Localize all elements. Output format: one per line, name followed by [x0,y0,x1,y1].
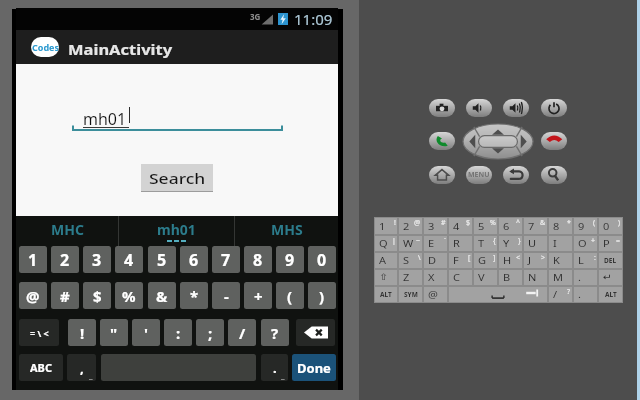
button[interactable]: 1 [375,218,397,234]
button[interactable]: # [51,282,79,309]
button[interactable]: Search [141,164,213,191]
button[interactable] [449,287,547,302]
button[interactable]: V [474,270,497,285]
button[interactable]: . [574,270,597,285]
button[interactable]: ' [132,319,160,346]
button[interactable]: / [228,319,256,346]
button[interactable]: 5 [474,218,497,234]
button[interactable]: 4 [115,246,143,273]
button[interactable]: Directional pad [463,124,533,159]
button[interactable]: G [474,253,497,268]
button[interactable]: % [115,282,143,309]
button[interactable]: W [399,236,422,251]
button[interactable]: 9 [276,246,304,273]
button[interactable]: 9 [574,218,597,234]
button[interactable]: Call [429,132,455,150]
button[interactable]: Power [541,99,567,117]
button[interactable]: = \ < [19,319,59,346]
button[interactable]: - [212,282,240,309]
button[interactable]: E [424,236,447,251]
button[interactable]: H [499,253,522,268]
button[interactable]: + [244,282,272,309]
button[interactable]: $ [83,282,111,309]
button[interactable]: Volume down [466,99,492,117]
button[interactable]: DEL [599,253,622,268]
button[interactable]: 8 [549,218,572,234]
button[interactable]: , [67,354,96,381]
button[interactable]: MENU [466,166,492,184]
button[interactable]: . [261,354,288,381]
button[interactable]: J [524,253,547,268]
button[interactable]: R [449,236,472,251]
button[interactable]: Search [541,166,567,184]
button[interactable]: . [574,287,597,302]
button[interactable]: M [549,270,572,285]
button[interactable]: 2 [51,246,79,273]
button[interactable]: 7 [524,218,547,234]
button[interactable]: Q [375,236,397,251]
button[interactable]: @ [424,287,447,302]
button[interactable]: U [524,236,547,251]
button[interactable]: 7 [212,246,240,273]
button[interactable]: Backspace [296,319,335,346]
button[interactable]: 3 [424,218,447,234]
button[interactable]: 6 [180,246,208,273]
button[interactable]: @ [19,282,47,309]
button[interactable]: Done [292,354,336,381]
button[interactable]: P [599,236,622,251]
button[interactable]: ABC [19,354,63,381]
button[interactable]: Z [399,270,422,285]
button[interactable]: ( [276,282,304,309]
button[interactable]: mh01 [72,108,283,132]
button[interactable]: * [180,282,208,309]
button[interactable]: ) [308,282,336,309]
button[interactable]: L [574,253,597,268]
button[interactable]: T [474,236,497,251]
button[interactable]: 2 [399,218,422,234]
staticText: ALT [605,290,617,299]
button[interactable]: D [424,253,447,268]
button[interactable]: ? [261,319,289,346]
button[interactable]: C [449,270,472,285]
button[interactable]: S [399,253,422,268]
button[interactable]: K [549,253,572,268]
button[interactable]: Camera [429,99,455,117]
button[interactable]: Y [499,236,522,251]
button[interactable]: MHC [16,216,118,246]
button[interactable]: : [164,319,192,346]
button[interactable]: 1 [19,246,47,273]
button[interactable]: ⇧ [375,270,397,285]
button[interactable]: F [449,253,472,268]
button[interactable]: X [424,270,447,285]
staticText: / [239,323,246,343]
button[interactable]: 0 [599,218,622,234]
button[interactable]: Codes [31,37,59,57]
button[interactable]: ↵ [599,270,622,285]
button[interactable]: " [100,319,128,346]
button[interactable]: / [549,287,572,302]
button[interactable]: A [375,253,397,268]
button[interactable]: O [574,236,597,251]
button[interactable]: B [499,270,522,285]
button[interactable]: 6 [499,218,522,234]
button[interactable]: ; [196,319,224,346]
button[interactable]: Volume up [503,99,529,117]
button[interactable]: N [524,270,547,285]
button[interactable]: ! [68,319,96,346]
button[interactable]: Home [429,166,455,184]
button[interactable]: 3 [83,246,111,273]
button[interactable]: 5 [148,246,176,273]
button[interactable]: ALT [599,287,622,302]
button[interactable]: & [148,282,176,309]
button[interactable]: 8 [244,246,272,273]
button[interactable]: ALT [375,287,397,302]
button[interactable]: 4 [449,218,472,234]
button[interactable]: Back [503,166,529,184]
button[interactable]: mh01 [119,216,234,246]
button[interactable]: SYM [399,287,422,302]
button[interactable]: 0 [308,246,336,273]
button[interactable]: MHS [235,216,338,246]
button[interactable]: End call [541,132,567,150]
button[interactable]: I [549,236,572,251]
